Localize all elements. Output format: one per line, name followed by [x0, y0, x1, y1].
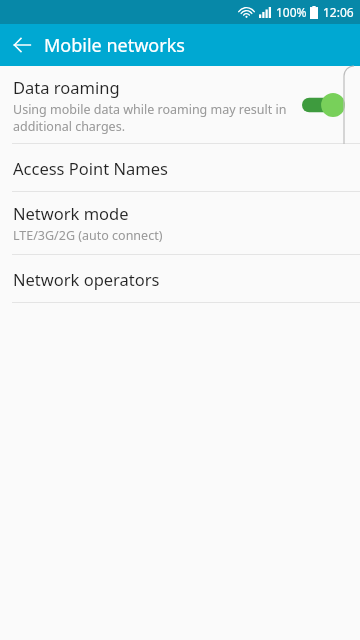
button[interactable]: Data roaming toggle: [302, 92, 346, 118]
staticText: 12:06: [323, 4, 354, 20]
button[interactable]: Access Point Names: [0, 144, 360, 191]
staticText: Network operators: [13, 268, 160, 290]
staticText: Using mobile data while roaming may resu…: [13, 101, 292, 134]
staticText: Access Point Names: [13, 157, 168, 179]
staticText: LTE/3G/2G (auto connect): [13, 227, 163, 244]
button[interactable]: Data roaming: [0, 66, 360, 143]
staticText: Mobile networks: [44, 33, 185, 58]
staticText: 100%: [276, 4, 307, 20]
staticText: Network mode: [13, 202, 129, 224]
button[interactable]: Navigate up: [0, 24, 44, 66]
button[interactable]: Network operators: [0, 255, 360, 302]
staticText: Data roaming: [13, 76, 120, 98]
button[interactable]: Network mode: [0, 192, 360, 254]
